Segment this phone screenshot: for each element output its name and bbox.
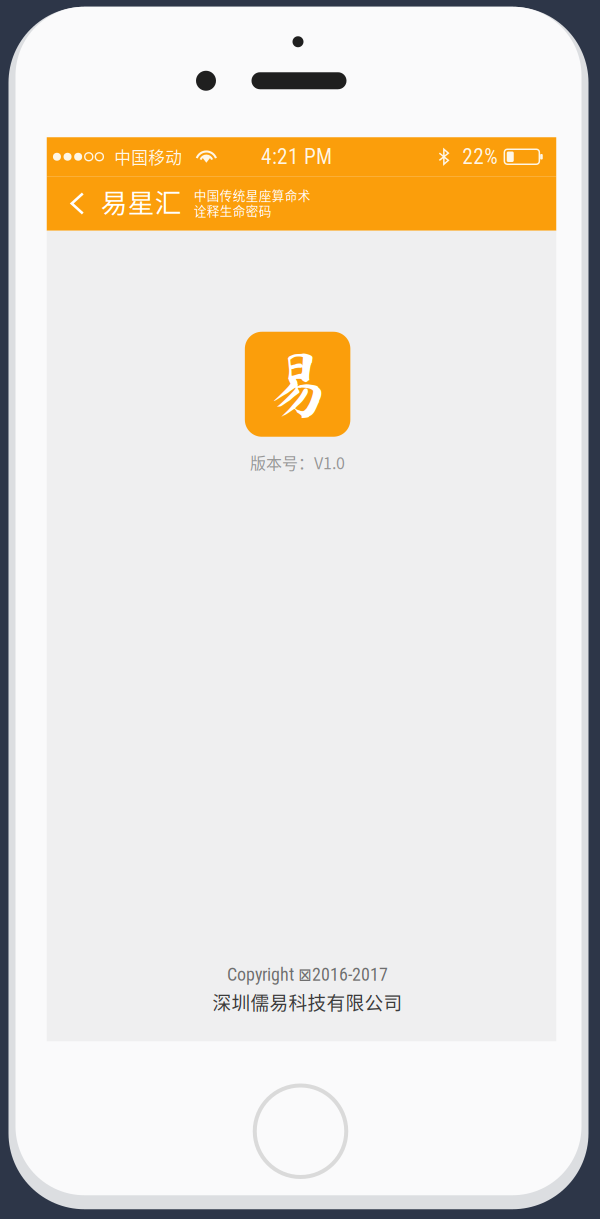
staticText: 中国传统星座算命术 <box>194 186 311 204</box>
staticText: 4:21 PM <box>261 144 332 169</box>
staticText: 中国移动 <box>114 145 182 169</box>
staticText: 易星汇 <box>101 182 182 220</box>
staticText: 版本号：V1.0 <box>250 451 345 474</box>
button[interactable]: 返回 易星汇 <box>47 176 183 230</box>
staticText: 深圳儒易科技有限公司 <box>213 988 403 1015</box>
staticText: Copyright ⊠2016-2017 <box>227 964 388 985</box>
staticText: 22% <box>462 144 498 169</box>
staticText: 诠释生命密码 <box>194 201 272 219</box>
staticText: 易 <box>261 348 334 421</box>
